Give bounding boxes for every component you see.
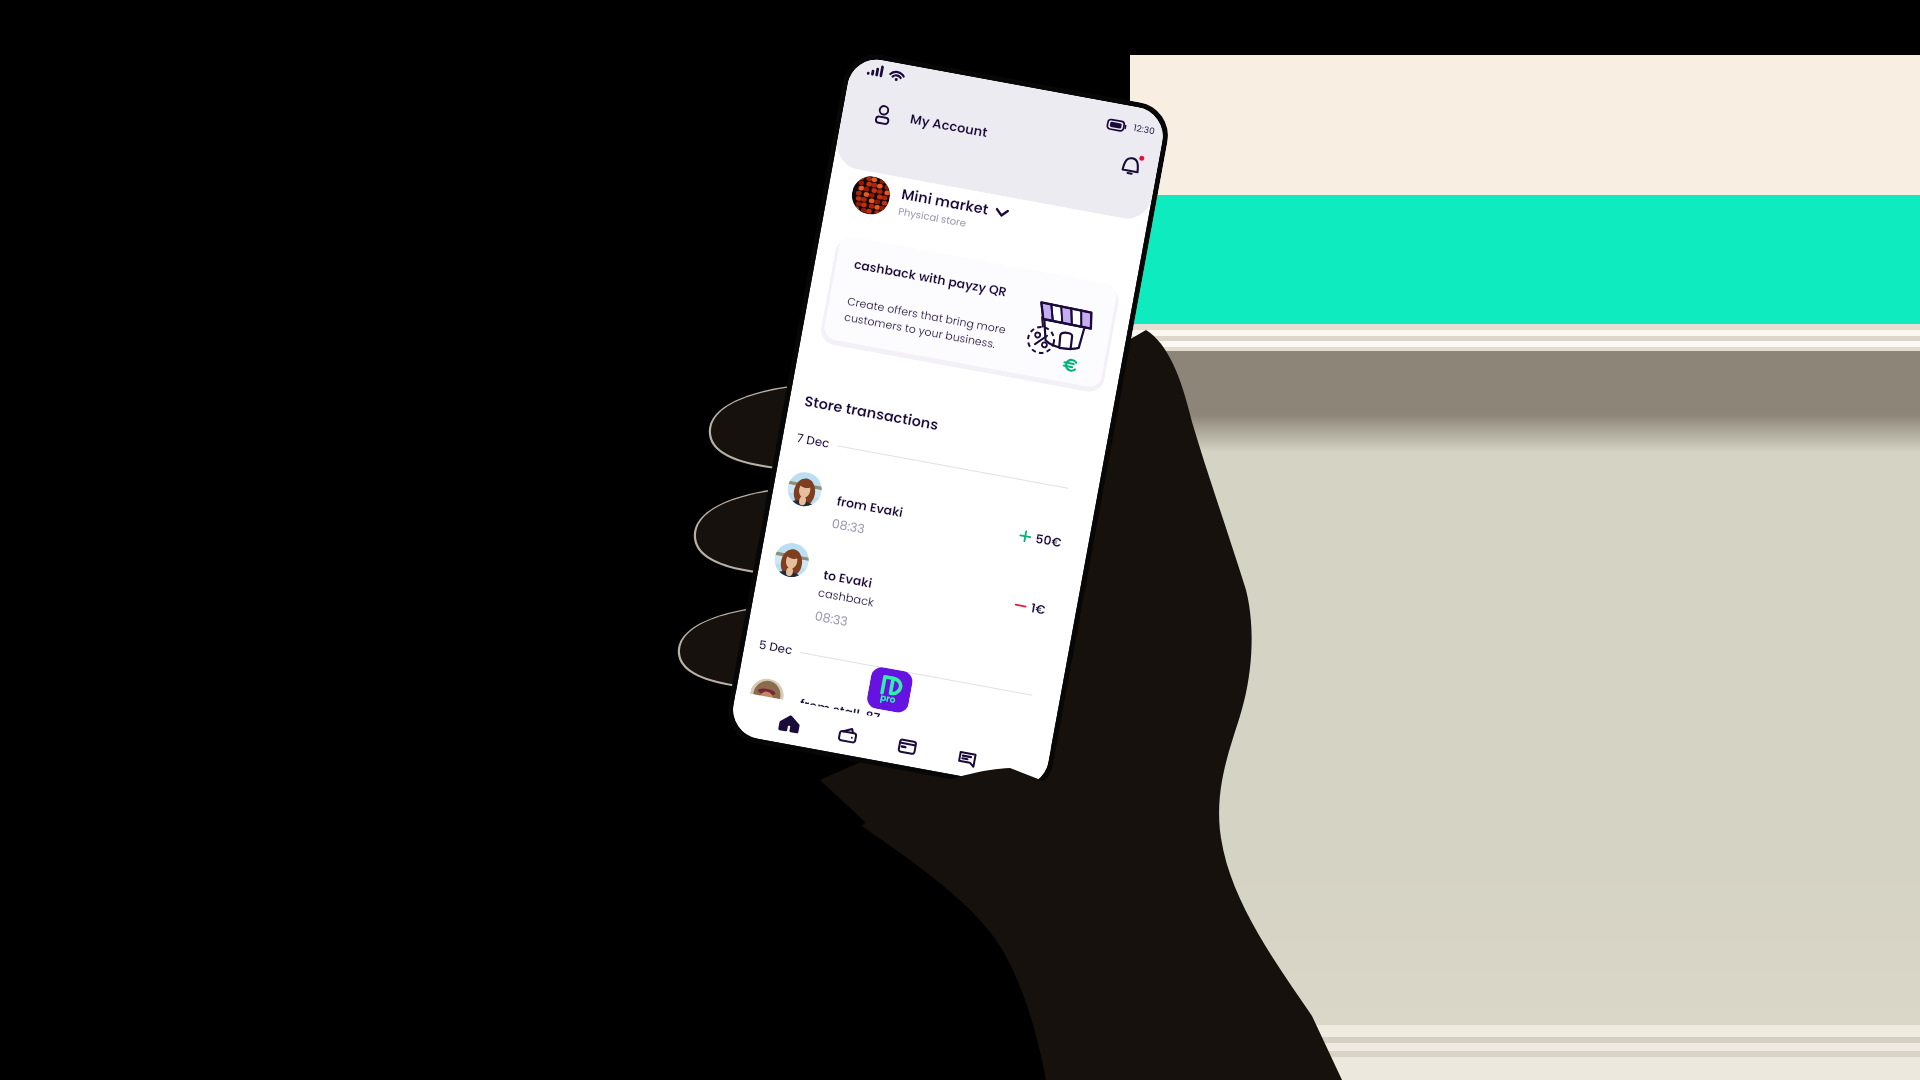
staticText: to Evaki xyxy=(822,566,874,592)
staticText: 08:33 xyxy=(830,515,867,538)
button[interactable]: Profile xyxy=(868,101,897,130)
staticText: My Account xyxy=(909,109,990,141)
staticText: 7 Dec xyxy=(795,429,831,452)
staticText: cashback with payzy QR xyxy=(853,256,1008,300)
staticText: cashback xyxy=(817,584,876,610)
staticText: 08:33 xyxy=(813,607,850,630)
button[interactable] xyxy=(778,465,1076,586)
button[interactable]: Wallet xyxy=(836,723,860,748)
staticText: Create offers that bring more customers … xyxy=(843,293,1007,353)
button[interactable]: cashback with payzy QR xyxy=(822,235,1119,389)
button[interactable]: Cards xyxy=(895,734,920,759)
staticText: pro xyxy=(879,691,897,707)
button[interactable]: payzy pro xyxy=(865,665,914,714)
staticText: 12:30 xyxy=(1132,122,1156,138)
staticText: 5 Dec xyxy=(757,636,794,658)
staticText: from Evaki xyxy=(836,492,905,521)
button[interactable] xyxy=(765,536,1063,657)
staticText: Store transactions xyxy=(803,391,940,435)
staticText: 50€ xyxy=(1034,530,1064,550)
staticText: from stall 87 xyxy=(798,695,882,726)
button[interactable] xyxy=(741,672,1038,788)
button[interactable]: Home xyxy=(777,712,802,736)
button[interactable]: Messages xyxy=(955,745,980,770)
button[interactable]: Mini market xyxy=(848,171,1082,254)
button[interactable]: Notifications xyxy=(1114,149,1148,183)
staticText: Physical store xyxy=(897,204,968,230)
staticText: 1€ xyxy=(1030,599,1047,618)
staticText: Mini market xyxy=(900,184,991,220)
